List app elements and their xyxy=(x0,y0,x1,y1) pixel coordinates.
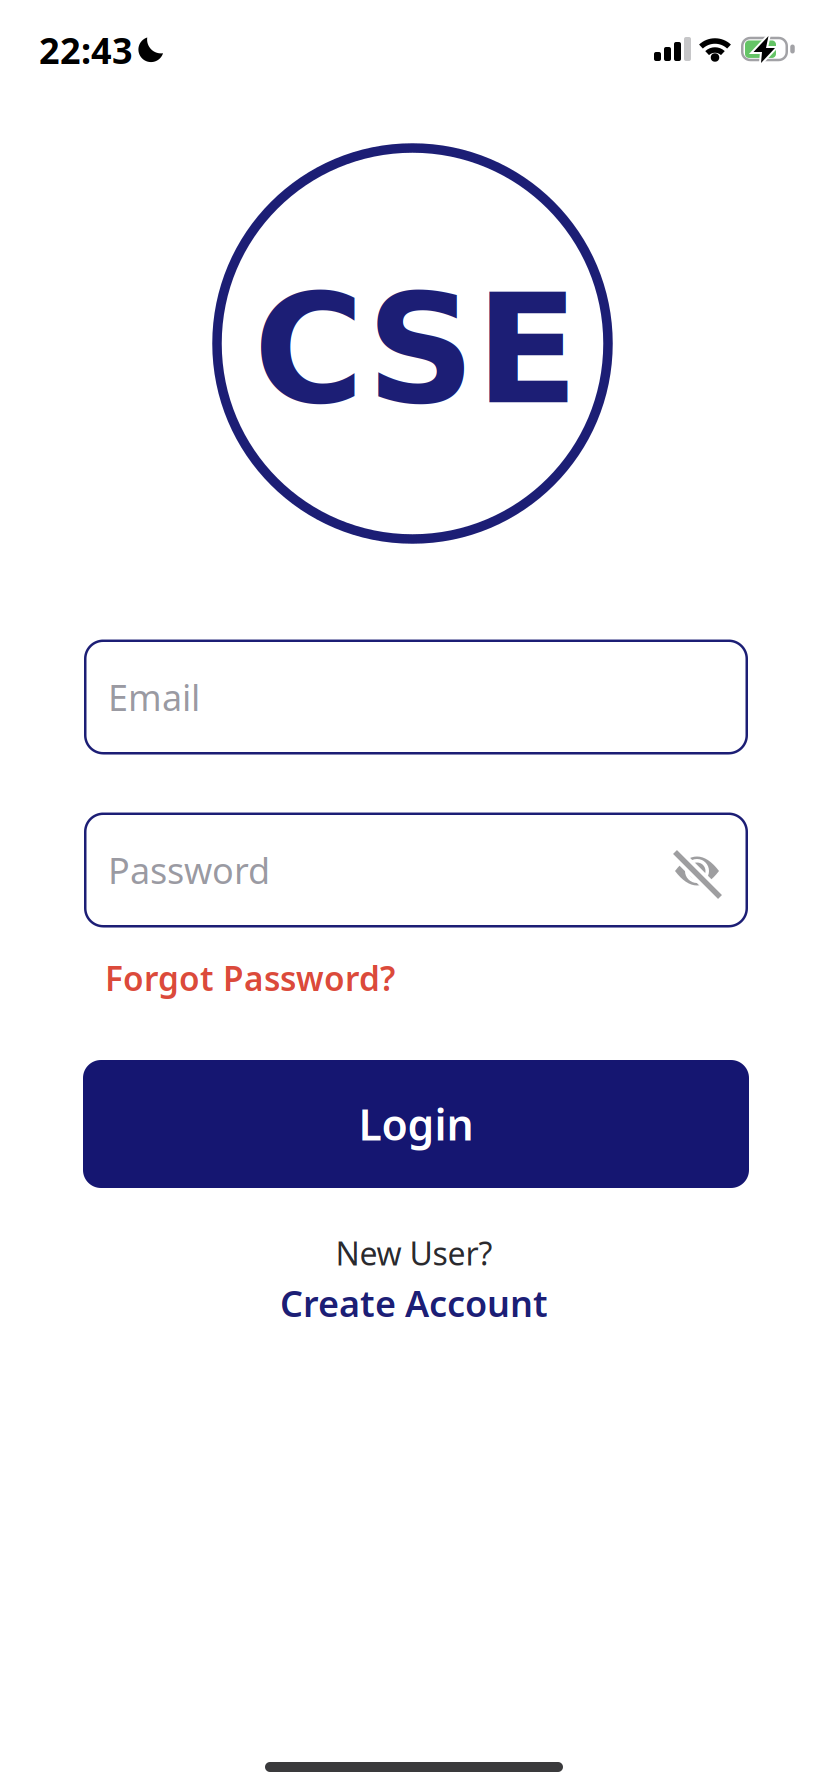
button[interactable]: Forgot Password? xyxy=(105,956,395,1000)
staticText: Login xyxy=(358,1096,473,1152)
staticText: Forgot Password? xyxy=(105,956,395,1000)
staticText: 22:43 xyxy=(39,26,133,74)
staticText: CSE xyxy=(253,262,578,438)
staticText: Password xyxy=(108,846,270,894)
button[interactable]: Password xyxy=(84,812,748,927)
staticText: Email xyxy=(108,673,200,721)
button[interactable]: Show password xyxy=(667,841,727,901)
button[interactable]: Login xyxy=(83,1060,749,1188)
staticText: Create Account xyxy=(280,1279,548,1327)
button[interactable]: Create Account xyxy=(280,1279,548,1327)
button[interactable]: Email xyxy=(84,639,748,754)
staticText: New User? xyxy=(335,1232,492,1274)
